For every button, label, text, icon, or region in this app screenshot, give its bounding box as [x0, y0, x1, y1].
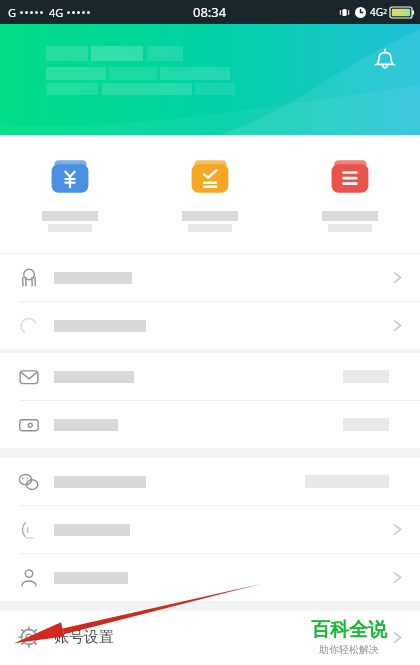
- staticText: 2: [383, 7, 388, 17]
- other: Item icon: [18, 519, 40, 541]
- staticText: 百科全说: [311, 618, 387, 642]
- staticText: 账号设置: [54, 628, 114, 647]
- staticText: 4G: [370, 5, 383, 19]
- other: Shortcut: [327, 156, 373, 202]
- other: Shortcut: [47, 156, 93, 202]
- button[interactable]: Item icon: [0, 458, 420, 505]
- other: Item icon: [18, 267, 40, 289]
- button[interactable]: Notifications: [368, 42, 402, 76]
- button[interactable]: Shortcut: [0, 150, 140, 238]
- button[interactable]: Item icon: [0, 401, 420, 448]
- button[interactable]: Item icon: [0, 506, 420, 553]
- button[interactable]: 账号设置: [0, 611, 420, 663]
- other: Item icon: [18, 471, 40, 493]
- other: Item icon: [18, 366, 40, 388]
- staticText: 08:34: [193, 3, 227, 21]
- other: Shortcut: [187, 156, 233, 202]
- button[interactable]: Item icon: [0, 254, 420, 301]
- button[interactable]: Item icon: [0, 353, 420, 400]
- other: Item icon: [18, 567, 40, 589]
- button[interactable]: Item icon: [0, 554, 420, 601]
- button[interactable]: Shortcut: [280, 150, 420, 238]
- other: Item icon: [18, 414, 40, 436]
- staticText: 助你轻松解决: [319, 643, 379, 656]
- button[interactable]: Item icon: [0, 302, 420, 349]
- other: Item icon: [18, 315, 40, 337]
- button[interactable]: Shortcut: [140, 150, 280, 238]
- staticText: G: [8, 5, 17, 20]
- staticText: 4G: [49, 5, 64, 20]
